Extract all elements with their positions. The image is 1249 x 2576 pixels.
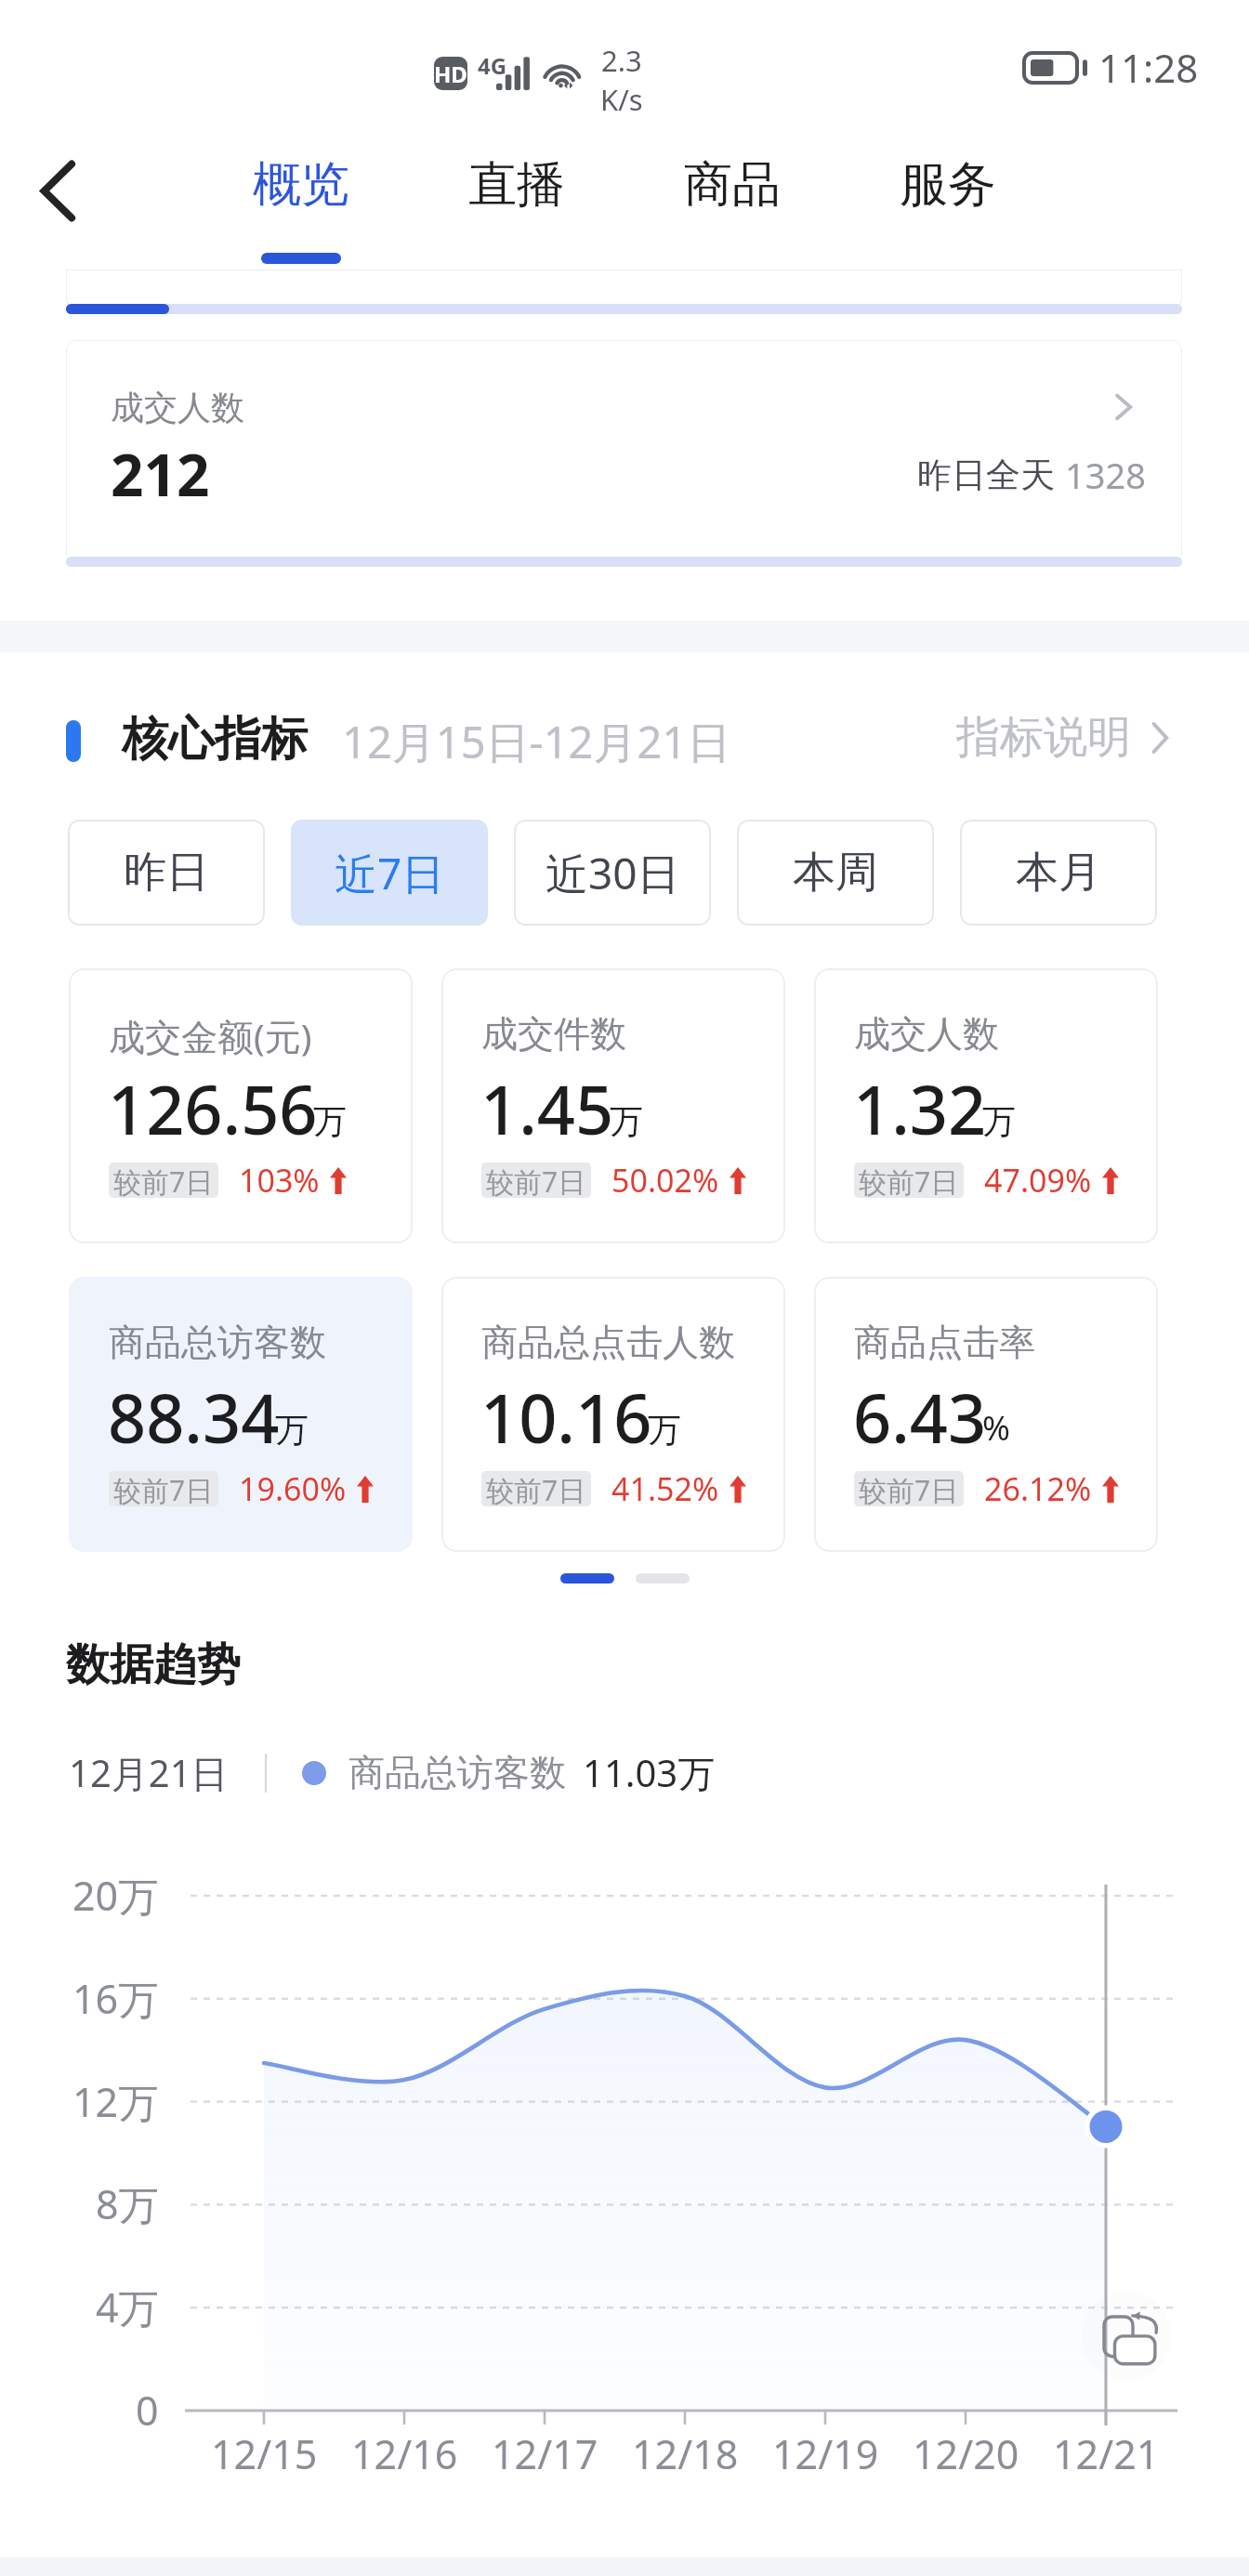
staticText: 直播 xyxy=(468,154,565,216)
staticText: 成交人数 xyxy=(854,1011,999,1057)
staticText: 12/17 xyxy=(492,2426,598,2481)
staticText: 12/20 xyxy=(913,2426,1019,2481)
staticText: 商品总点击人数 xyxy=(481,1320,735,1365)
button[interactable]: 直播 xyxy=(463,134,571,279)
staticText: 较前7日 xyxy=(859,1471,959,1506)
button[interactable]: 近7日 xyxy=(291,820,488,926)
staticText: 昨日 xyxy=(124,846,209,900)
staticText: 2.3 xyxy=(601,41,642,80)
staticText: 核心指标 xyxy=(122,710,308,769)
staticText: 成交金额(元) xyxy=(109,1011,312,1060)
staticText: 50.02% xyxy=(611,1159,719,1202)
staticText: 万 xyxy=(610,1100,643,1142)
button[interactable]: 概览 xyxy=(247,134,355,279)
staticText: 万 xyxy=(275,1409,309,1451)
staticText: 12/16 xyxy=(351,2426,458,2481)
staticText: 20万 xyxy=(72,1868,159,1923)
staticText: 4万 xyxy=(96,2280,159,2334)
staticText: 万 xyxy=(313,1100,347,1142)
staticText: 12/15 xyxy=(211,2426,318,2481)
staticText: 近30日 xyxy=(546,844,680,902)
staticText: 212 xyxy=(111,435,210,513)
staticText: 126.56 xyxy=(108,1063,318,1154)
button[interactable]: 商品 xyxy=(678,134,786,279)
staticText: 12/18 xyxy=(632,2426,739,2481)
staticText: 12/19 xyxy=(772,2426,879,2481)
staticText: 12万 xyxy=(72,2074,159,2129)
button[interactable]: 服务 xyxy=(894,134,1002,279)
staticText: 88.34 xyxy=(108,1372,280,1463)
staticText: K/s xyxy=(600,80,643,119)
staticText: 41.52% xyxy=(611,1467,719,1510)
staticText: 昨日全天 xyxy=(917,453,1055,497)
staticText: 万 xyxy=(648,1409,681,1451)
button[interactable]: 本周 xyxy=(737,820,934,926)
staticText: 商品总访客数 xyxy=(348,1750,566,1795)
button[interactable]: Back xyxy=(17,150,99,231)
button[interactable]: 指标说明 xyxy=(956,710,1169,765)
staticText: 成交人数 xyxy=(111,387,244,428)
staticText: 服务 xyxy=(900,154,996,216)
button[interactable]: 成交金额(元) xyxy=(69,968,413,1243)
staticText: 8万 xyxy=(96,2176,159,2231)
staticText: HD xyxy=(434,59,467,89)
staticText: 本月 xyxy=(1016,846,1101,900)
staticText: 4G xyxy=(478,50,507,81)
staticText: 数据趋势 xyxy=(66,1637,241,1692)
button[interactable]: 成交件数 xyxy=(441,968,785,1243)
button[interactable]: 本月 xyxy=(960,820,1157,926)
button[interactable]: 商品总点击人数 xyxy=(441,1277,785,1552)
button[interactable]: Rotate chart xyxy=(1082,2292,1171,2381)
button[interactable]: 成交人数 xyxy=(66,340,1182,563)
staticText: 0 xyxy=(136,2383,159,2438)
staticText: 本周 xyxy=(793,846,878,900)
staticText: 1.45 xyxy=(480,1063,614,1154)
staticText: 商品点击率 xyxy=(854,1320,1035,1365)
staticText: 11:28 xyxy=(1098,41,1199,94)
staticText: 1328 xyxy=(1065,451,1146,499)
staticText: 近7日 xyxy=(335,844,445,902)
button[interactable]: 商品点击率 xyxy=(814,1277,1158,1552)
staticText: 1.32 xyxy=(853,1063,987,1154)
button[interactable]: 成交人数 xyxy=(814,968,1158,1243)
staticText: 12月15日-12月21日 xyxy=(342,712,731,771)
staticText: 较前7日 xyxy=(113,1471,214,1506)
button[interactable]: 昨日 xyxy=(68,820,265,926)
staticText: 商品总访客数 xyxy=(109,1320,326,1365)
staticText: 19.60% xyxy=(239,1467,347,1510)
staticText: 指标说明 xyxy=(956,710,1131,765)
staticText: 16万 xyxy=(72,1971,159,2026)
button[interactable]: 近30日 xyxy=(514,820,711,926)
staticText: 较前7日 xyxy=(486,1471,586,1506)
button[interactable]: 商品总访客数 xyxy=(69,1277,413,1552)
staticText: % xyxy=(982,1405,1010,1451)
staticText: 12月21日 xyxy=(69,1747,229,1798)
staticText: 商品 xyxy=(684,154,781,216)
staticText: 较前7日 xyxy=(859,1163,959,1198)
staticText: 47.09% xyxy=(984,1159,1092,1202)
staticText: 较前7日 xyxy=(486,1163,586,1198)
staticText: 较前7日 xyxy=(113,1163,214,1198)
staticText: 10.16 xyxy=(480,1372,652,1463)
staticText: 26.12% xyxy=(984,1467,1092,1510)
staticText: 12/21 xyxy=(1053,2426,1160,2481)
staticText: 成交件数 xyxy=(481,1011,626,1057)
staticText: 11.03万 xyxy=(583,1747,716,1798)
staticText: 概览 xyxy=(253,154,349,216)
staticText: 万 xyxy=(982,1100,1016,1142)
staticText: 103% xyxy=(239,1159,320,1202)
staticText: 6.43 xyxy=(853,1372,987,1463)
